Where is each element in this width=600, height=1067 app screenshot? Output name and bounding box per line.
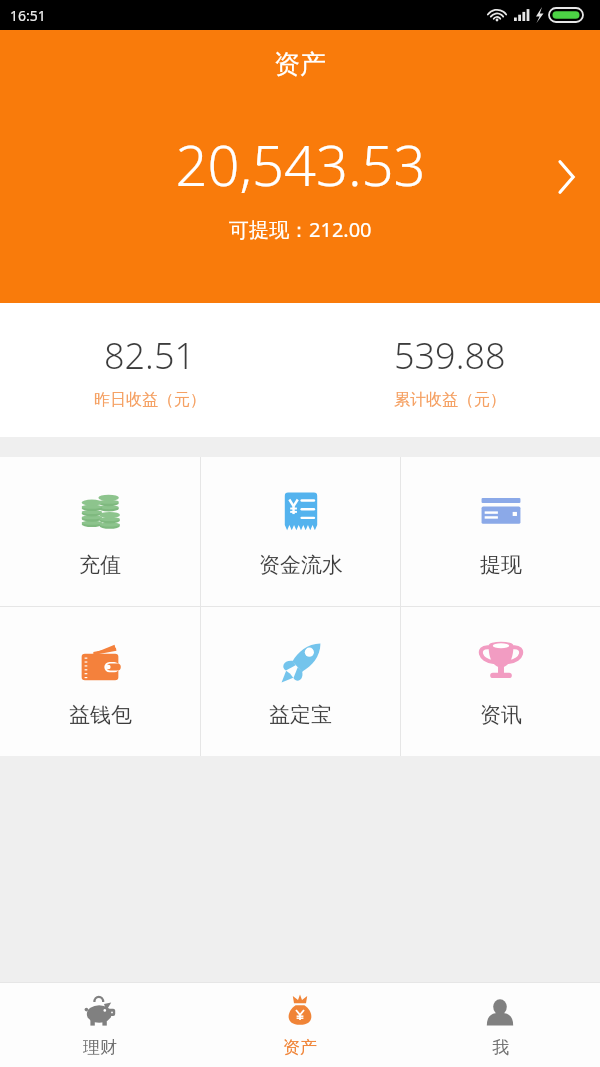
staticText: 提现 [480,552,522,578]
staticText: 充值 [79,552,121,578]
staticText: 20,543.53 [175,126,426,202]
staticText: 累计收益（元） [394,390,506,410]
staticText: 资产 [274,48,326,81]
button[interactable]: 充值 [0,457,200,606]
button[interactable]: 82.51 [0,303,300,437]
staticText: 资产 [283,1037,317,1058]
button[interactable]: 理财 [0,983,200,1067]
staticText: 理财 [83,1037,117,1058]
other: 查看资产详情 [554,158,578,196]
staticText: 539.88 [394,331,506,380]
button[interactable]: 益定宝 [201,607,400,756]
button[interactable]: 资金流水 [201,457,400,606]
staticText: 我 [492,1037,509,1058]
button[interactable]: 资产 [0,30,600,303]
button[interactable]: 资讯 [401,607,600,756]
staticText: 资讯 [480,702,522,728]
button[interactable]: 提现 [401,457,600,606]
button[interactable]: 资产 [200,983,400,1067]
staticText: 昨日收益（元） [94,390,206,410]
staticText: 可提现：212.00 [229,216,372,243]
staticText: 益钱包 [69,702,132,728]
button[interactable]: 我 [400,983,600,1067]
staticText: 16:51 [10,6,46,25]
staticText: 益定宝 [269,702,332,728]
button[interactable]: 益钱包 [0,607,200,756]
staticText: 资金流水 [259,552,343,578]
staticText: 82.51 [104,331,196,380]
button[interactable]: 539.88 [300,303,600,437]
